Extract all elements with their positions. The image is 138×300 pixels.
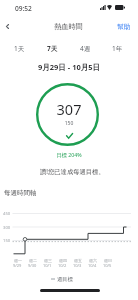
- staticText: 1天: [14, 44, 25, 53]
- staticText: 熱血時間: [54, 22, 83, 31]
- staticText: 週一: [14, 258, 22, 263]
- staticText: 10/2: [58, 263, 67, 268]
- staticText: 9月29日 - 10月5日: [38, 62, 101, 72]
- staticText: 週四: [59, 258, 67, 263]
- staticText: 150: [3, 238, 11, 243]
- staticText: 307: [0, 99, 138, 119]
- staticText: 450: [3, 211, 11, 216]
- staticText: 週三: [44, 258, 52, 263]
- staticText: 1年: [112, 44, 123, 53]
- staticText: 週六: [89, 258, 97, 263]
- staticText: 09:52: [15, 4, 32, 13]
- button[interactable]: 7天: [37, 41, 67, 55]
- staticText: 週日: [104, 258, 112, 263]
- staticText: 10/4: [88, 263, 97, 268]
- staticText: 7天: [47, 44, 58, 53]
- staticText: 10/1: [43, 263, 52, 268]
- staticText: 9/30: [28, 263, 37, 268]
- staticText: 週目標: [57, 276, 73, 283]
- staticText: 每週時間軸: [4, 189, 37, 197]
- staticText: 9/29: [13, 263, 22, 268]
- button[interactable]: 1年: [102, 41, 132, 55]
- staticText: 10/5: [103, 263, 112, 268]
- staticText: 讚!您已達成每週目標。: [40, 167, 105, 176]
- staticText: 日標 204%: [0, 151, 138, 158]
- button[interactable]: 1天: [4, 41, 34, 55]
- staticText: 週二: [29, 258, 37, 263]
- button[interactable]: Back: [0, 16, 16, 36]
- staticText: 150: [0, 120, 138, 127]
- button[interactable]: 4週: [70, 41, 100, 55]
- staticText: 300: [3, 225, 11, 230]
- button[interactable]: 幫助: [112, 16, 136, 36]
- staticText: 週五: [74, 258, 82, 263]
- staticText: 10/3: [73, 263, 82, 268]
- staticText: 4週: [80, 44, 91, 53]
- staticText: 幫助: [117, 22, 131, 31]
